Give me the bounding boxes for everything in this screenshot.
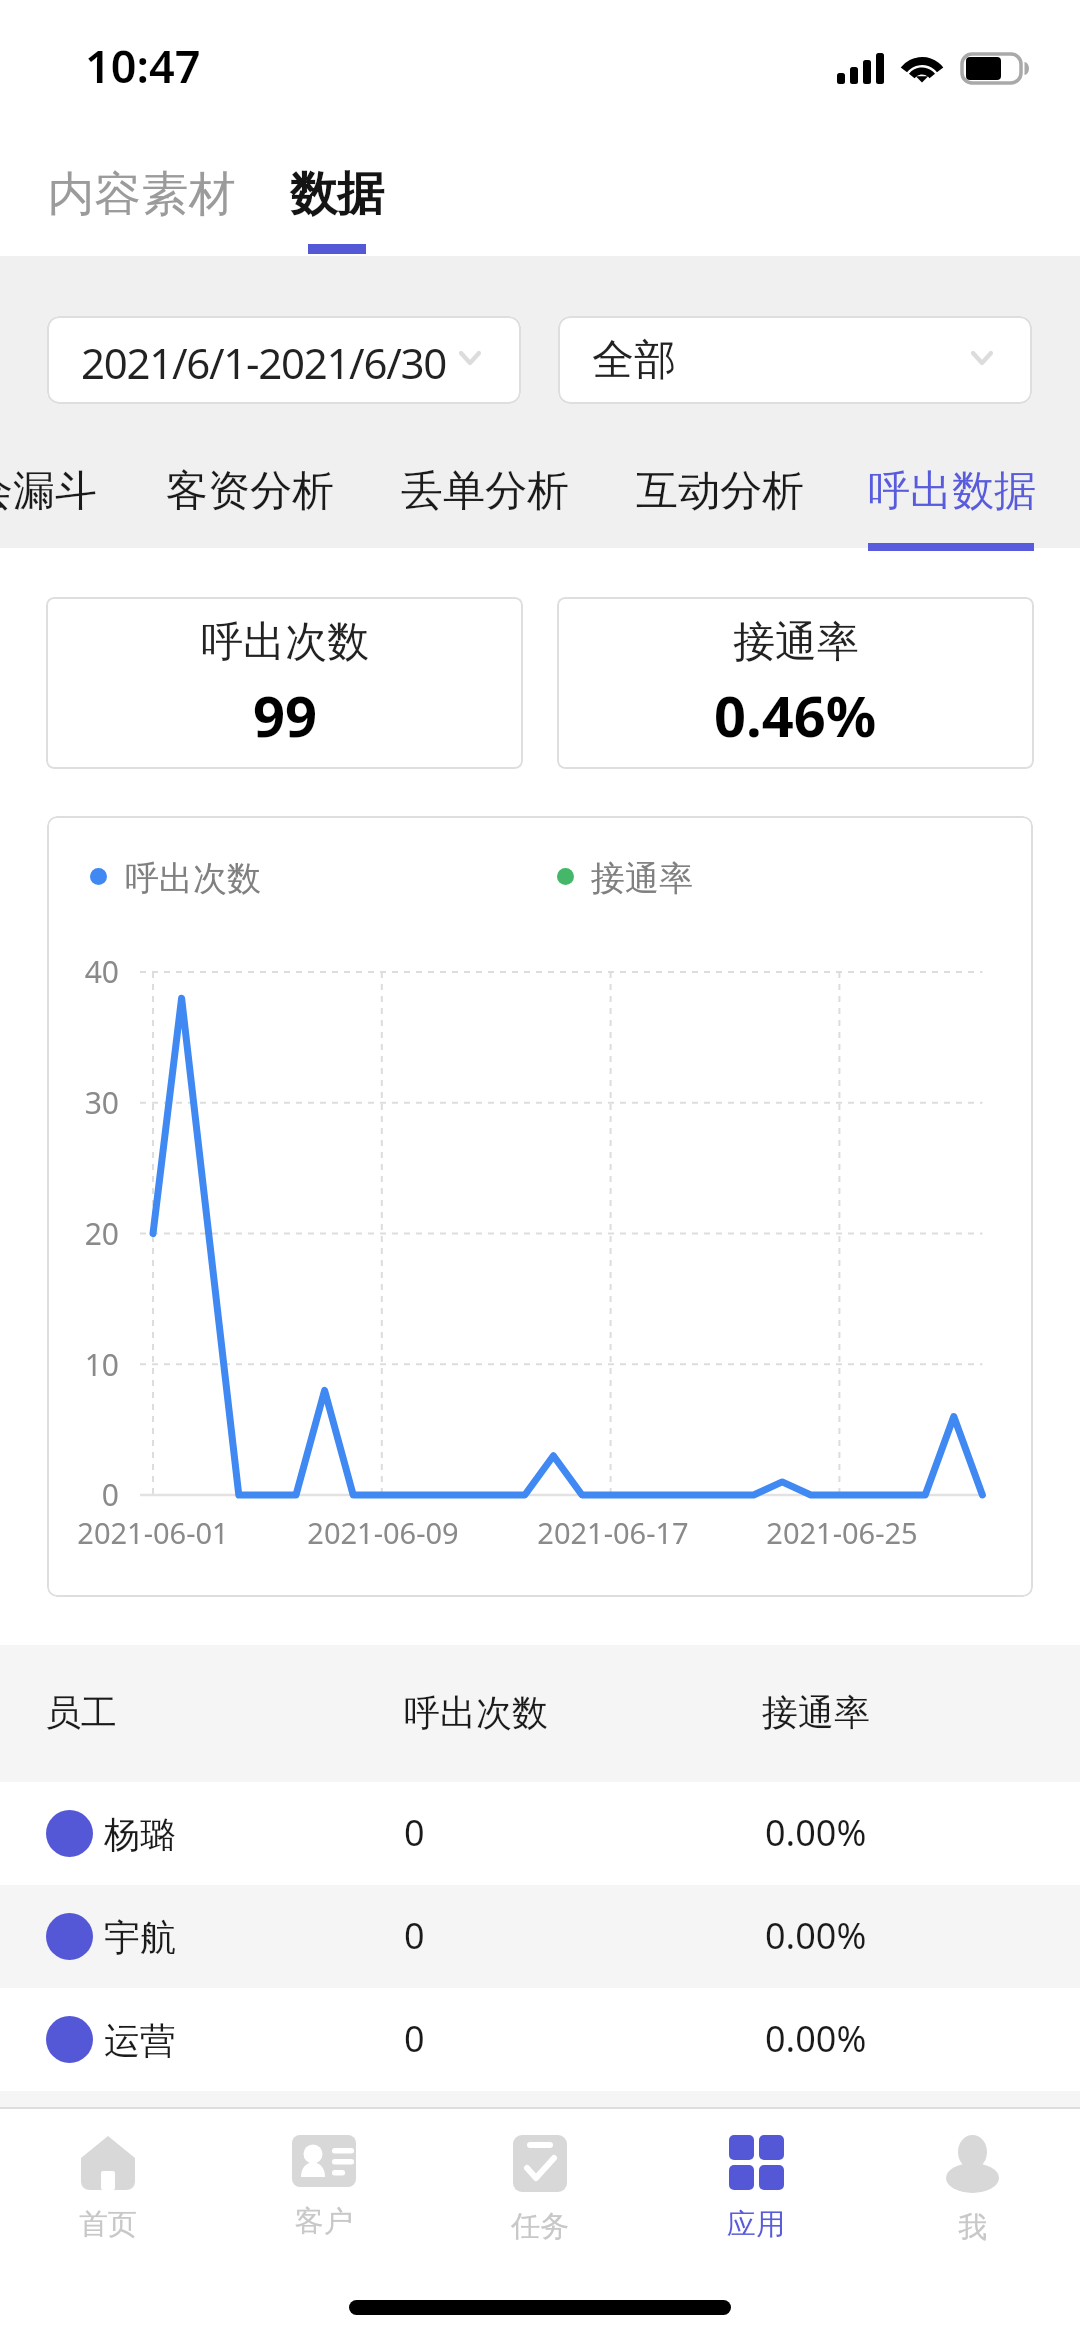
staticText: 丢单分析	[401, 465, 569, 518]
staticText: 应用	[727, 2206, 785, 2243]
button[interactable]: 首页	[0, 2109, 216, 2300]
button[interactable]: 2021/6/1-2021/6/30	[47, 316, 521, 404]
staticText: 10	[47, 1344, 119, 1385]
staticText: 任务	[511, 2208, 569, 2245]
staticText: 接通率	[591, 857, 693, 900]
staticText: 0.00%	[765, 1911, 867, 1960]
other: 我	[946, 2135, 999, 2193]
staticText: 40	[47, 951, 119, 992]
staticText: 员工	[45, 1690, 117, 1735]
staticText: 2021/6/1-2021/6/30	[81, 334, 446, 391]
staticText: 0	[404, 2014, 425, 2063]
staticText: 接通率	[762, 1690, 870, 1735]
other: Battery	[960, 52, 1032, 86]
staticText: 2021-06-17	[513, 1513, 713, 1552]
staticText: 运营	[104, 2018, 176, 2063]
button[interactable]: 应用	[648, 2109, 864, 2300]
staticText: 2021-06-09	[283, 1513, 483, 1552]
staticText: 全部	[592, 334, 676, 387]
staticText: 0.00%	[765, 1808, 867, 1857]
staticText: 宇航	[104, 1915, 176, 1960]
staticText: 互动分析	[636, 465, 804, 518]
button[interactable]: 丢单分析	[401, 438, 569, 540]
staticText: 呼出次数	[404, 1690, 548, 1735]
button[interactable]: 机会漏斗	[0, 438, 97, 540]
staticText: 客资分析	[166, 465, 334, 518]
staticText: 呼出数据	[868, 465, 1036, 518]
button[interactable]: 运营	[0, 1988, 1080, 2091]
staticText: 机会漏斗	[0, 465, 97, 518]
other: Wi-Fi	[898, 46, 946, 86]
button[interactable]: 客户	[216, 2109, 432, 2300]
staticText: 首页	[79, 2206, 137, 2243]
staticText: 2021-06-25	[742, 1513, 942, 1552]
button[interactable]: 互动分析	[636, 438, 804, 540]
staticText: 20	[47, 1213, 119, 1254]
staticText: 0	[404, 1808, 425, 1857]
button[interactable]: 数据	[283, 152, 391, 256]
button[interactable]: 我	[864, 2109, 1080, 2300]
staticText: 0.46%	[714, 677, 877, 753]
staticText: 0	[47, 1474, 119, 1515]
button[interactable]: 内容素材	[41, 152, 242, 232]
staticText: 数据	[283, 165, 391, 224]
staticText: 接通率	[733, 616, 859, 669]
button[interactable]: 宇航	[0, 1885, 1080, 1988]
staticText: 30	[47, 1082, 119, 1123]
staticText: 0	[404, 1911, 425, 1960]
button[interactable]: 呼出数据	[868, 438, 1036, 540]
staticText: 0.00%	[765, 2014, 867, 2063]
staticText: 客户	[295, 2203, 353, 2240]
button[interactable]: 呼出次数	[46, 597, 523, 769]
staticText: 呼出次数	[201, 616, 369, 669]
button[interactable]: 任务	[432, 2109, 648, 2300]
button[interactable]: 杨璐	[0, 1782, 1080, 1885]
button[interactable]: 全部	[558, 316, 1032, 404]
staticText: 呼出次数	[125, 857, 261, 900]
staticText: 我	[958, 2209, 987, 2246]
button[interactable]: 接通率	[557, 597, 1034, 769]
staticText: 99	[253, 677, 318, 753]
staticText: 杨璐	[104, 1812, 176, 1857]
staticText: 10:47	[85, 35, 201, 96]
staticText: 2021-06-01	[53, 1513, 253, 1552]
staticText: 内容素材	[41, 165, 242, 224]
other: Cellular signal	[837, 53, 885, 85]
button[interactable]: 客资分析	[166, 438, 334, 540]
